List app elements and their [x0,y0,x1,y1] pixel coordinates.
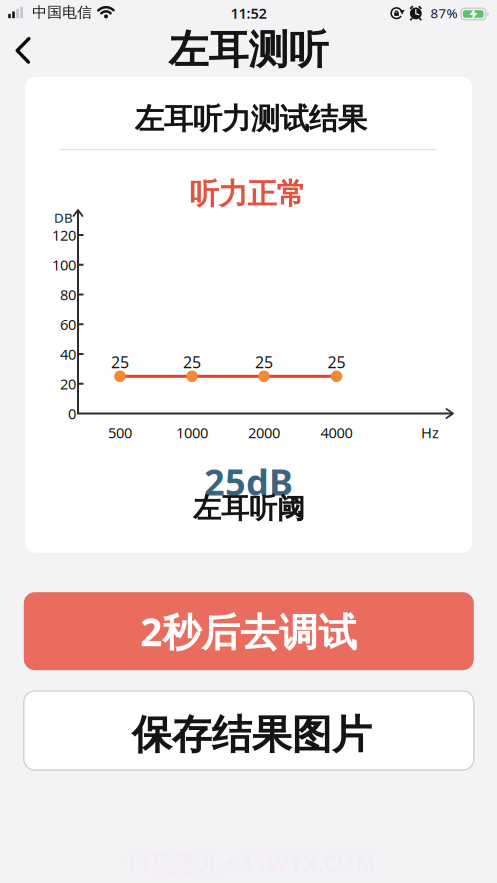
staticText: 25 [183,351,201,373]
staticText: 120 [52,225,76,245]
staticText: 80 [60,285,76,304]
staticText: 11:52 [230,3,266,23]
button[interactable]: 2秒后去调试 [24,592,474,670]
staticText: 左耳听阈 [193,491,305,526]
staticText: 0 [68,404,76,423]
staticText: 2秒后去调试 [140,605,357,657]
staticText: 60 [60,314,76,334]
staticText: 1000 [176,423,208,442]
staticText: 4000 [320,423,352,442]
staticText: 87% [430,4,457,22]
staticText: 中国电信 [32,3,92,21]
staticText: Hz [421,423,439,442]
staticText: 左耳测听 [168,25,328,74]
staticText: 25 [327,351,345,373]
staticText: 20 [60,374,76,393]
button[interactable]: Back [3,33,47,67]
button[interactable]: 保存结果图片 [24,691,474,770]
staticText: 25dB [204,458,293,505]
staticText: 25 [111,351,129,373]
staticText: 500 [108,423,132,442]
staticText: 2000 [248,423,280,442]
staticText: DB [54,209,73,226]
staticText: 听力正常 [190,176,306,212]
staticText: 100 [52,255,76,274]
staticText: 左耳听力测试结果 [135,101,367,137]
staticText: 40 [60,344,76,364]
staticText: 25 [255,351,273,373]
staticText: 保存结果图片 [132,710,372,759]
